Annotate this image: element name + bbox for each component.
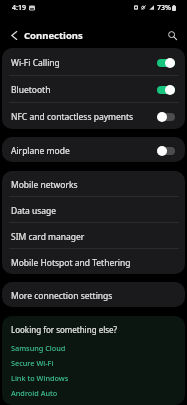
button[interactable]: Bluetooth (2, 76, 185, 102)
staticText: Samsung Cloud (11, 343, 66, 353)
button[interactable]: Wi-Fi Calling (2, 48, 185, 75)
staticText: Bluetooth (11, 84, 51, 96)
button[interactable]: Bluetooth toggle (157, 85, 175, 95)
staticText: Mobile networks (11, 179, 78, 191)
button[interactable]: Mobile networks (2, 171, 185, 196)
staticText: Wi-Fi Calling (11, 57, 60, 69)
button[interactable]: Search (164, 27, 180, 43)
staticText: SIM card manager (11, 231, 85, 243)
button[interactable]: Android Auto (11, 388, 58, 397)
button[interactable]: Back (6, 27, 22, 43)
staticText: Secure Wi-Fi (11, 358, 54, 368)
button[interactable]: NFC and contactless payments toggle (157, 112, 175, 122)
staticText: Looking for something else? (11, 324, 118, 335)
button[interactable]: Secure Wi-Fi (11, 358, 54, 368)
staticText: Link to Windows (11, 373, 69, 383)
staticText: 73% (157, 3, 171, 13)
staticText: Connections (24, 29, 83, 42)
button[interactable]: Wi-Fi Calling toggle (157, 58, 175, 68)
staticText: Airplane mode (11, 145, 70, 157)
button[interactable]: Samsung Cloud (11, 343, 66, 353)
staticText: Data usage (11, 205, 57, 217)
button[interactable]: Airplane mode toggle (157, 146, 175, 156)
staticText: Android Auto (11, 388, 58, 397)
button[interactable]: SIM card manager (2, 223, 185, 248)
button[interactable]: NFC and contactless payments (2, 103, 185, 129)
button[interactable]: Link to Windows (11, 373, 69, 383)
button[interactable]: Data usage (2, 197, 185, 222)
staticText: NFC and contactless payments (11, 111, 134, 123)
button[interactable]: Airplane mode (2, 137, 185, 162)
staticText: 4:19 (12, 3, 26, 13)
staticText: More connection settings (11, 290, 113, 302)
button[interactable]: Mobile Hotspot and Tethering (2, 249, 185, 274)
button[interactable]: More connection settings (2, 282, 185, 307)
staticText: Mobile Hotspot and Tethering (11, 257, 131, 269)
